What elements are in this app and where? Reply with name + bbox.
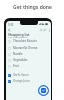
staticText: Garlic Sauce: [13, 73, 30, 77]
button[interactable]: Back: [6, 27, 12, 33]
button[interactable]: Vegetables: [6, 57, 51, 63]
staticText: Shopping list: [8, 32, 30, 37]
staticText: Fruit: [13, 64, 20, 68]
staticText: Vegetables: [13, 58, 28, 62]
button[interactable]: Add task: [38, 85, 49, 96]
button[interactable]: Mozzarella Cheese: [6, 45, 51, 51]
button[interactable]: Fruit: [6, 63, 51, 69]
staticText: Chocolate Biscuits: [13, 39, 37, 43]
button[interactable]: More options: [47, 28, 51, 32]
staticText: Mozzarella Cheese: [13, 46, 38, 50]
button[interactable]: Search: [39, 28, 43, 32]
staticText: 5 of 7 remaining: [8, 35, 27, 38]
button[interactable]: Chocolate Biscuits: [6, 38, 51, 44]
button[interactable]: Sort: [43, 28, 47, 32]
button[interactable]: Garlic Sauce: [6, 72, 51, 78]
button[interactable]: Noodle: [6, 51, 51, 57]
staticText: 9:30: [8, 23, 14, 27]
staticText: Orange Juice: [13, 79, 30, 83]
staticText: Get things done: [13, 4, 52, 11]
staticText: Noodle: [13, 52, 23, 56]
button[interactable]: Orange Juice: [6, 78, 51, 84]
